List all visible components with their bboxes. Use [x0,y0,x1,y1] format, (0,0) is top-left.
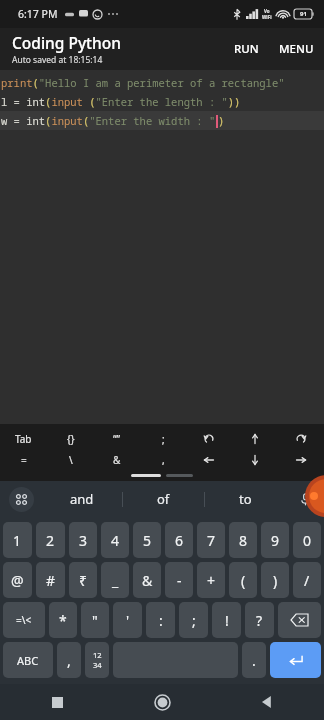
button[interactable]: * [49,602,77,638]
button[interactable]: : [146,602,175,638]
button[interactable]: , [57,642,81,678]
button[interactable]: . [242,642,266,678]
button[interactable]: Move down [232,449,278,470]
staticText: ) [273,571,278,590]
button[interactable]: MENU [273,36,320,62]
staticText: - [177,571,182,590]
button[interactable]: & [133,562,161,598]
staticText: and [70,490,94,508]
button[interactable]: Voice input [286,481,324,517]
staticText: 6 [175,531,184,550]
staticText: ABC [17,653,39,668]
button[interactable]: to [205,481,286,517]
staticText: ( [241,571,246,590]
button[interactable]: Move up [232,428,278,449]
button[interactable]: Undo [186,428,232,449]
button[interactable]: 4 [101,522,129,558]
staticText: \ [69,453,73,467]
staticText: Auto saved at 18:15:14 [12,54,103,66]
button[interactable]: + [197,562,225,598]
button[interactable]: @ [3,562,32,598]
staticText: 0 [303,531,312,550]
button[interactable]: of [123,481,204,517]
button[interactable]: 5 [133,522,161,558]
button[interactable]: ' [113,602,142,638]
staticText: 4 [111,531,120,550]
button[interactable]: ) [261,562,289,598]
button[interactable]: ? [245,602,274,638]
staticText: {} [67,432,75,446]
button[interactable]: , [140,449,186,470]
button[interactable]: 2 [36,522,65,558]
staticText: MENU [279,41,314,57]
staticText: & [113,453,121,467]
button[interactable]: \ [47,449,94,470]
button[interactable]: _ [101,562,129,598]
button[interactable]: Tab [0,428,47,449]
button[interactable]: Home [145,685,179,719]
staticText: Tab [15,432,32,446]
button[interactable]: RUN [228,36,265,62]
staticText: 7 [207,531,216,550]
staticText: * [59,611,67,630]
button[interactable]: Redo [278,428,324,449]
staticText: ) [218,114,225,128]
button[interactable]: Numbers [85,642,109,678]
button[interactable]: =\< [3,602,45,638]
button[interactable]: # [36,562,65,598]
staticText: ₹ [79,571,88,590]
button[interactable]: 8 [229,522,257,558]
staticText: " [92,611,98,630]
button[interactable]: = [0,449,47,470]
button[interactable]: ₹ [69,562,97,598]
staticText: RUN [234,41,259,57]
button[interactable]: & [94,449,140,470]
staticText: =\< [16,613,32,627]
staticText: ; [162,432,165,446]
staticText: ? [256,611,263,630]
button[interactable]: 3 [69,522,97,558]
staticText: , [67,651,71,670]
button[interactable]: 6 [165,522,193,558]
button[interactable]: / [293,562,321,598]
staticText: 3 [79,531,88,550]
staticText: ! [225,611,229,630]
button[interactable]: ; [179,602,208,638]
staticText: 12 [93,650,102,660]
button[interactable]: and [42,481,122,517]
staticText: w = int(input("Enter the width : " [1,114,216,128]
button[interactable]: Enter [270,642,321,678]
button[interactable]: Recents [40,685,74,719]
staticText: . [252,651,256,670]
staticText: , [162,453,165,467]
button[interactable]: Move left [186,449,232,470]
button[interactable]: ; [140,428,186,449]
button[interactable]: ( [229,562,257,598]
button[interactable]: 1 [3,522,32,558]
staticText: = [21,453,27,467]
staticText: / [304,571,310,590]
button[interactable]: Move right [278,449,324,470]
button[interactable]: {} [47,428,94,449]
button[interactable]: 9 [261,522,289,558]
staticText: _ [112,571,119,590]
button[interactable]: Back [250,685,284,719]
staticText: 5 [143,531,152,550]
button[interactable]: 0 [293,522,321,558]
staticText: to [239,490,252,508]
button[interactable]: Keyboard menu [0,481,42,517]
staticText: l = int(input ("Enter the length : ")) [1,95,241,109]
staticText: + [207,571,216,590]
staticText: ' [126,611,130,630]
button[interactable]: 7 [197,522,225,558]
staticText: 9 [271,531,280,550]
button[interactable]: " [81,602,109,638]
staticText: 34 [93,660,102,670]
staticText: WiFi [262,14,272,20]
button[interactable]: Backspace [278,602,321,638]
button[interactable]: ! [212,602,241,638]
button[interactable]: - [165,562,193,598]
button[interactable]: “” [94,428,140,449]
button[interactable]: ABC [3,642,53,678]
